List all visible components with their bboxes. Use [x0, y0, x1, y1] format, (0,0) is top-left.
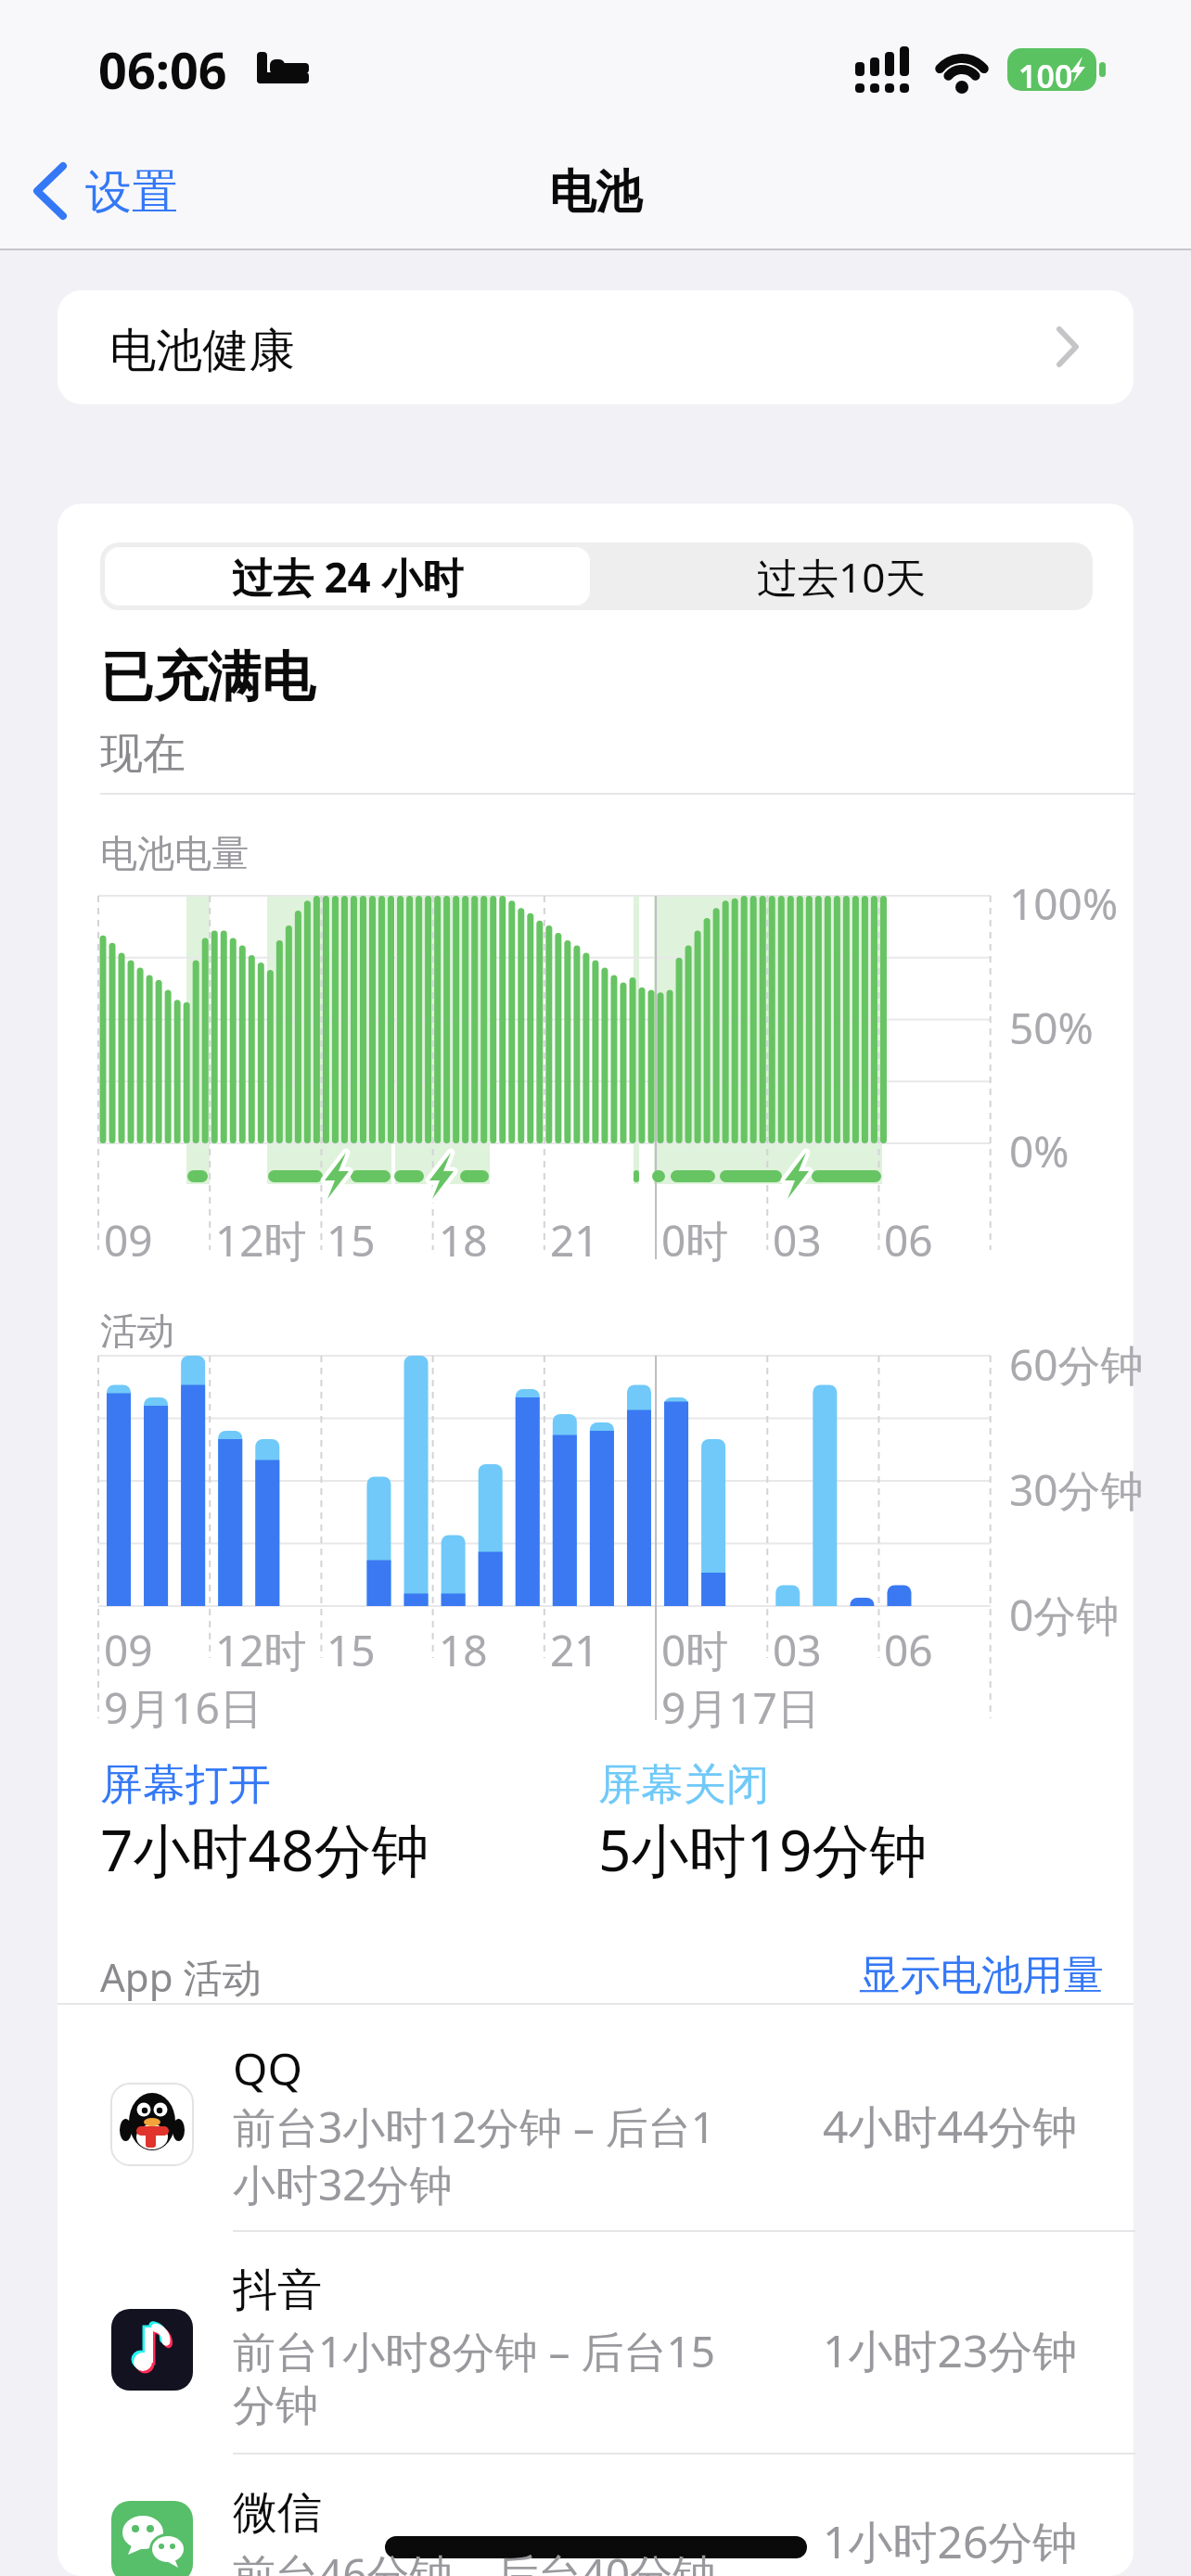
staticText: 21	[550, 1211, 599, 1269]
staticText: 过去 24 小时	[232, 549, 464, 605]
staticText: 03	[773, 1621, 822, 1679]
staticText: 分钟	[233, 2379, 318, 2433]
staticText: 100	[1018, 55, 1073, 97]
staticText: 电池健康	[109, 322, 295, 380]
staticText: App 活动	[100, 1950, 262, 2003]
staticText: 显示电池用量	[859, 1950, 1104, 2001]
staticText: 21	[550, 1621, 599, 1679]
staticText: 15	[327, 1621, 376, 1679]
staticText: 7小时48分钟	[100, 1810, 429, 1889]
button[interactable]	[28, 153, 241, 229]
staticText: 前台3小时12分钟 – 后台1	[233, 2098, 716, 2156]
staticText: 06	[884, 1211, 933, 1269]
staticText: 06:06	[98, 35, 227, 104]
staticText: 0%	[1009, 1122, 1069, 1180]
staticText: 1小时26分钟	[823, 2511, 1078, 2572]
staticText: 已充满电	[100, 644, 315, 711]
button[interactable]	[58, 290, 1133, 404]
staticText: 屏幕打开	[100, 1758, 271, 1812]
staticText: 5小时19分钟	[598, 1810, 928, 1889]
staticText: 12时	[215, 1211, 307, 1269]
button[interactable]: 过去10天	[591, 546, 1093, 606]
staticText: 微信	[233, 2485, 322, 2541]
staticText: 屏幕关闭	[598, 1758, 769, 1812]
staticText: 12时	[215, 1621, 307, 1679]
staticText: 15	[327, 1211, 376, 1269]
staticText: 现在	[100, 727, 186, 781]
staticText: 9月17日	[661, 1678, 820, 1737]
staticText: 电池	[549, 163, 642, 222]
staticText: 活动	[100, 1307, 174, 1354]
staticText: 60分钟	[1009, 1335, 1144, 1394]
staticText: 前台1小时8分钟 – 后台15	[233, 2322, 716, 2380]
staticText: 30分钟	[1009, 1460, 1144, 1519]
button[interactable]: 显示电池用量	[807, 1947, 1104, 1998]
staticText: 9月16日	[104, 1678, 263, 1737]
staticText: 设置	[85, 163, 178, 222]
staticText: 电池电量	[100, 830, 249, 876]
staticText: 抖音	[233, 2263, 322, 2318]
staticText: 100%	[1009, 874, 1119, 933]
staticText: 0分钟	[1009, 1586, 1120, 1644]
button[interactable]: 过去 24 小时	[104, 546, 591, 606]
staticText: 0时	[661, 1211, 729, 1269]
staticText: 18	[439, 1211, 488, 1269]
staticText: 06	[884, 1621, 933, 1679]
staticText: 50%	[1009, 999, 1094, 1057]
staticText: 09	[104, 1211, 153, 1269]
button[interactable]	[58, 2005, 1133, 2230]
staticText: 18	[439, 1621, 488, 1679]
button[interactable]	[58, 2232, 1133, 2453]
staticText: 03	[773, 1211, 822, 1269]
staticText: 4小时44分钟	[823, 2096, 1078, 2157]
button[interactable]	[104, 546, 591, 606]
button[interactable]	[58, 2455, 1133, 2576]
staticText: QQ	[233, 2038, 302, 2098]
staticText: 09	[104, 1621, 153, 1679]
staticText: 0时	[661, 1621, 729, 1679]
staticText: 1小时23分钟	[823, 2320, 1078, 2381]
staticText: 前台46分钟 – 后台40分钟	[233, 2544, 716, 2576]
staticText: 过去10天	[757, 549, 927, 605]
staticText: 小时32分钟	[233, 2155, 453, 2213]
